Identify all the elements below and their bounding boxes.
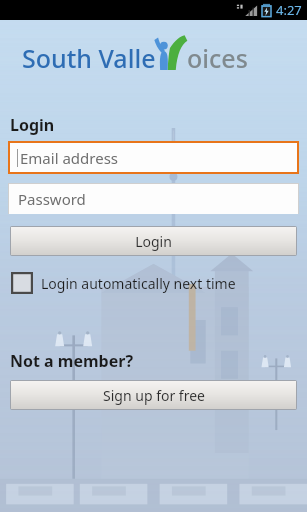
button[interactable]: Password — [8, 183, 299, 214]
staticText: Password — [18, 189, 86, 209]
staticText: Login automatically next time — [41, 274, 236, 293]
staticText: Login — [10, 114, 55, 136]
staticText: 4:27 — [276, 1, 302, 19]
staticText: Not a member? — [10, 350, 134, 372]
staticText: South Valle — [22, 41, 156, 75]
staticText: Sign up for free — [103, 386, 205, 405]
staticText: Email address — [20, 148, 119, 168]
staticText: oices — [187, 41, 248, 75]
button[interactable]: Email address — [8, 141, 299, 174]
button[interactable]: Login — [10, 226, 297, 256]
button[interactable]: Sign up for free — [10, 380, 297, 410]
staticText: Login — [135, 232, 172, 251]
button[interactable]: Login automatically next time — [11, 272, 236, 294]
